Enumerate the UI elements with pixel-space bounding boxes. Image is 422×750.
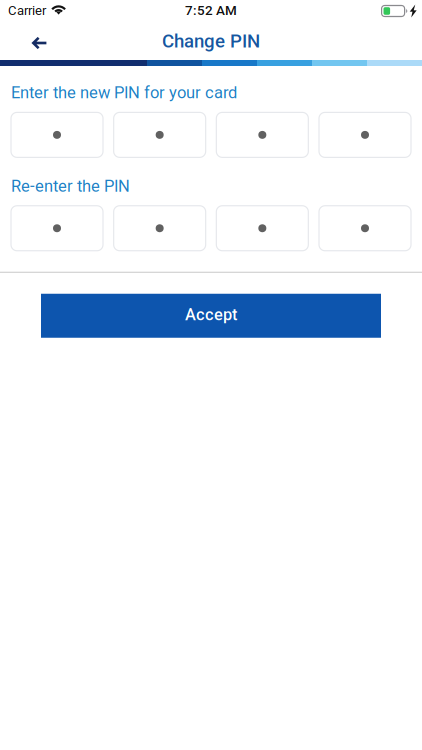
- button[interactable]: Back: [0, 27, 67, 54]
- button[interactable]: PIN digit: [114, 112, 206, 157]
- button[interactable]: PIN digit: [319, 206, 411, 251]
- button[interactable]: Accept: [41, 294, 381, 338]
- staticText: Enter the new PIN for your card: [11, 83, 237, 102]
- button[interactable]: PIN digit: [11, 112, 103, 157]
- staticText: Accept: [185, 305, 237, 324]
- staticText: Change PIN: [162, 30, 260, 52]
- staticText: Re-enter the PIN: [11, 176, 130, 196]
- button[interactable]: PIN digit: [216, 206, 308, 251]
- button[interactable]: PIN digit: [11, 206, 103, 251]
- button[interactable]: PIN digit: [319, 112, 411, 157]
- button[interactable]: PIN digit: [216, 112, 308, 157]
- button[interactable]: PIN digit: [114, 206, 206, 251]
- staticText: Carrier: [8, 3, 46, 18]
- staticText: 7:52 AM: [185, 3, 237, 18]
